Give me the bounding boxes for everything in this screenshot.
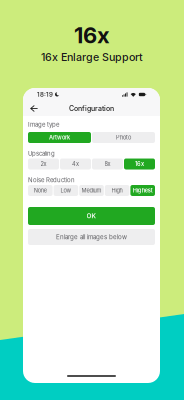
button[interactable]: 2x: [28, 158, 59, 169]
staticText: Noise Reduction: [28, 176, 75, 184]
staticText: Configuration: [69, 104, 114, 113]
staticText: 16x: [74, 22, 110, 49]
button[interactable]: Artwork: [28, 132, 91, 143]
button[interactable]: Highest: [130, 185, 155, 196]
button[interactable]: None: [28, 185, 53, 196]
staticText: OK: [86, 212, 96, 220]
button[interactable]: Back: [30, 105, 38, 112]
staticText: 8x: [104, 161, 110, 167]
staticText: Upscaling: [28, 150, 55, 157]
button[interactable]: High: [105, 185, 129, 196]
staticText: 18:19: [37, 91, 53, 98]
staticText: High: [112, 187, 123, 194]
staticText: Photo: [116, 134, 131, 141]
staticText: Highest: [133, 187, 153, 194]
staticText: 2x: [40, 161, 46, 167]
button[interactable]: 4x: [60, 158, 91, 169]
button[interactable]: Medium: [79, 185, 104, 196]
button[interactable]: Low: [54, 185, 78, 196]
button[interactable]: Photo: [92, 132, 155, 143]
staticText: 4x: [72, 161, 79, 167]
button[interactable]: OK: [28, 207, 155, 225]
staticText: 16x Enlarge Support: [41, 51, 143, 63]
staticText: None: [34, 187, 47, 194]
staticText: Artwork: [49, 134, 70, 141]
staticText: Enlarge all images below: [56, 233, 127, 241]
staticText: Medium: [81, 187, 101, 194]
button[interactable]: Enlarge all images below: [28, 229, 155, 245]
button[interactable]: 8x: [92, 158, 123, 169]
staticText: Low: [60, 187, 71, 194]
staticText: 16x: [135, 161, 144, 167]
staticText: Image type: [28, 121, 59, 128]
button[interactable]: 16x: [124, 158, 155, 169]
